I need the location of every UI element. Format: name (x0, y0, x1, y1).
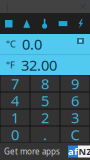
button[interactable]: Convert (18, 13, 36, 34)
staticText: 8 (41, 74, 49, 93)
button[interactable]: More (72, 13, 90, 34)
staticText: . (43, 125, 47, 144)
staticText: 0 (11, 125, 19, 144)
button[interactable]: Notes (0, 13, 18, 34)
button[interactable]: Temperature (36, 13, 54, 34)
button[interactable]: 8 (30, 75, 59, 91)
staticText: 2 (41, 108, 49, 127)
button[interactable]: 9 (60, 75, 89, 91)
staticText: °C (6, 38, 16, 50)
staticText: i (5, 0, 8, 15)
button[interactable]: C (60, 126, 89, 142)
staticText: 1 (11, 108, 19, 127)
staticText: 32.00 (21, 55, 57, 75)
staticText: 9 (71, 74, 79, 93)
staticText: °F (6, 59, 15, 71)
button[interactable]: Copy value (77, 38, 84, 44)
staticText: 5 (41, 91, 49, 110)
staticText: 6 (71, 91, 79, 110)
button[interactable]: Display (54, 13, 72, 34)
button[interactable]: Get more apps (0, 143, 90, 160)
staticText: 4 (11, 91, 19, 110)
button[interactable]: 2 (30, 109, 59, 125)
button[interactable]: Info (2, 0, 12, 13)
button[interactable]: 4 (0, 92, 29, 108)
button[interactable]: Close (78, 0, 88, 13)
button[interactable]: 6 (60, 92, 89, 108)
button[interactable]: 0 (0, 126, 29, 142)
staticText: NZ (78, 145, 90, 158)
staticText: C (70, 125, 79, 144)
button[interactable]: 7 (0, 75, 29, 91)
staticText: af (68, 145, 78, 158)
button[interactable]: . (30, 126, 59, 142)
staticText: Get more apps (4, 146, 60, 157)
button[interactable]: 1 (0, 109, 29, 125)
staticText: 7 (11, 74, 19, 93)
button[interactable]: 5 (30, 92, 59, 108)
button[interactable]: 3 (60, 109, 89, 125)
staticText: ✕ (78, 0, 87, 12)
staticText: 0.0 (22, 34, 42, 54)
staticText: 3 (71, 108, 79, 127)
